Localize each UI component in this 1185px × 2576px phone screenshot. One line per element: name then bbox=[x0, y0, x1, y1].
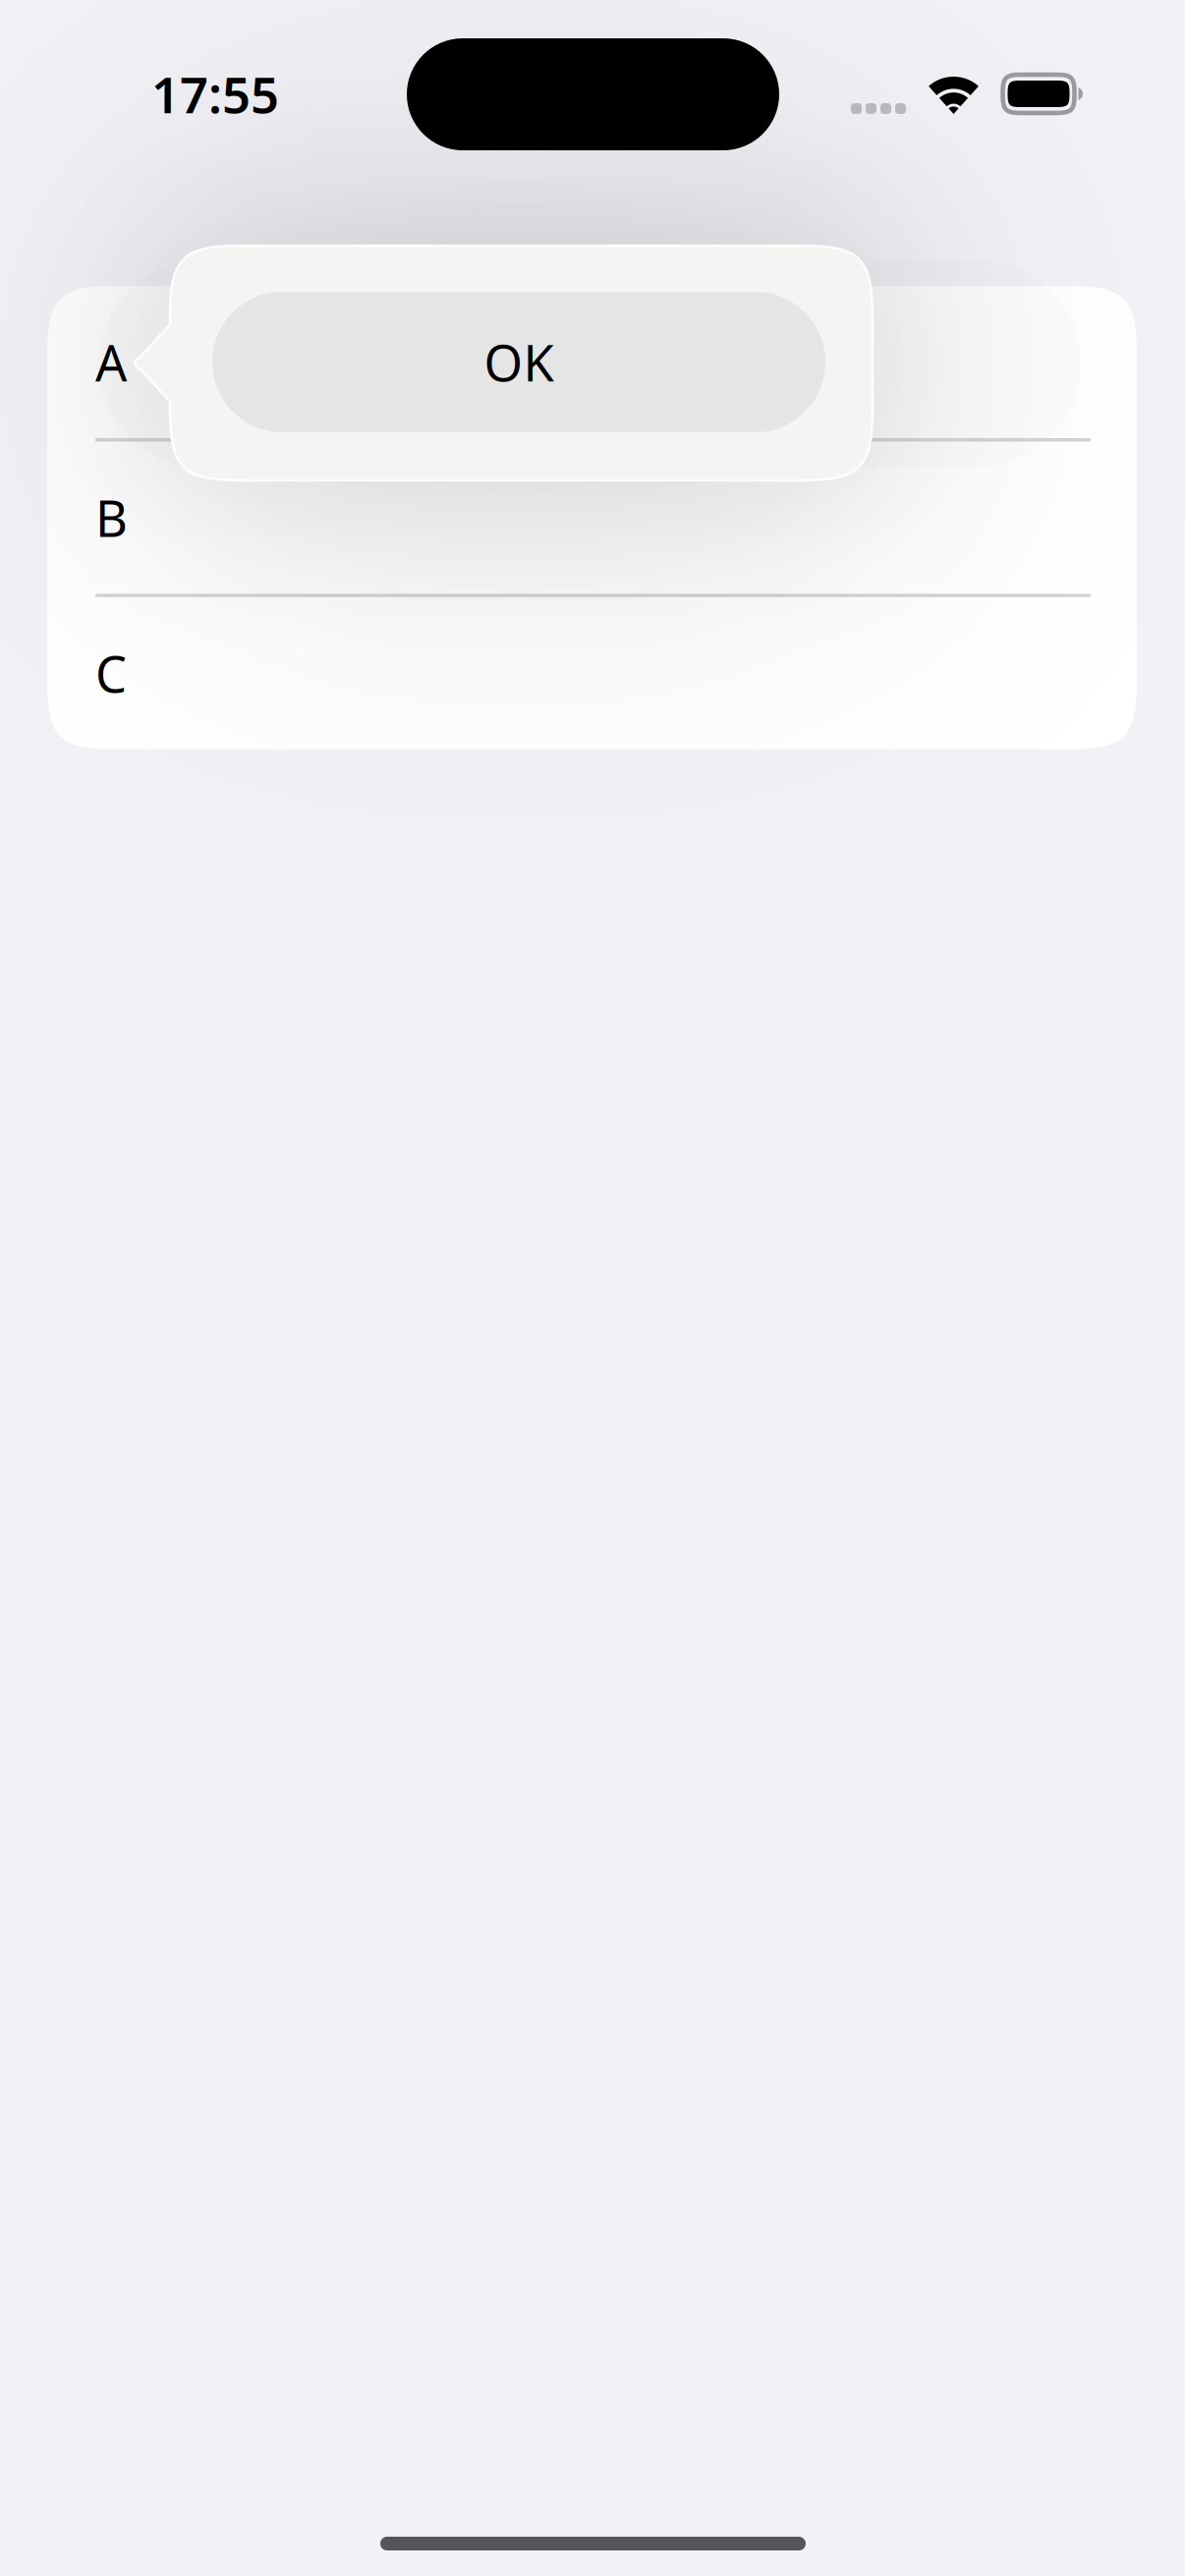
staticText: C bbox=[95, 640, 127, 706]
staticText: A bbox=[95, 329, 127, 395]
staticText: 17:55 bbox=[151, 61, 279, 127]
button[interactable]: A bbox=[47, 286, 1137, 438]
button[interactable]: OK bbox=[212, 292, 825, 432]
button[interactable]: B bbox=[47, 442, 1137, 594]
staticText: OK bbox=[484, 329, 554, 395]
staticText: B bbox=[95, 485, 128, 551]
button[interactable]: C bbox=[47, 597, 1137, 749]
